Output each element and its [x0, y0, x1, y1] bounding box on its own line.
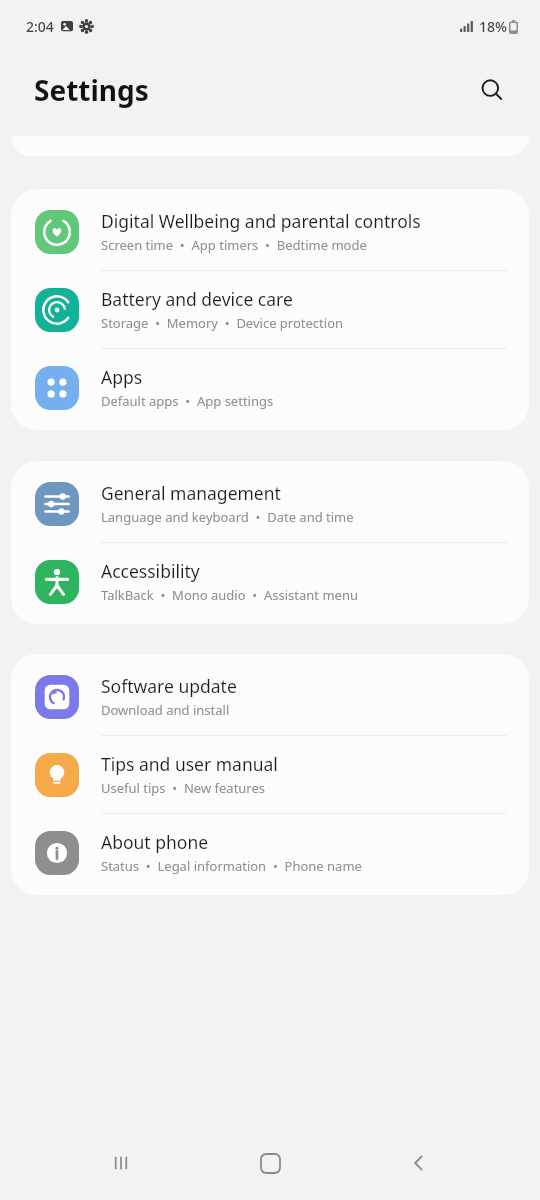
staticText: Screen time • App timers • Bedtime mode	[101, 236, 367, 254]
button[interactable]: Recent apps	[93, 1135, 149, 1191]
staticText: Tips and user manual	[101, 752, 278, 776]
staticText: Software update	[101, 674, 237, 698]
staticText: Default apps • App settings	[101, 392, 274, 410]
button[interactable]: General management	[11, 465, 529, 542]
button[interactable]: Home	[242, 1135, 298, 1191]
button[interactable]: Apps	[11, 349, 529, 426]
staticText: About phone	[101, 830, 209, 854]
button[interactable]: Software update	[11, 658, 529, 735]
staticText: Accessibility	[101, 559, 200, 583]
staticText: Storage • Memory • Device protection	[101, 314, 344, 332]
button[interactable]: Battery and device care	[11, 271, 529, 348]
staticText: Useful tips • New features	[101, 779, 266, 797]
staticText: 18%	[479, 17, 507, 36]
staticText: Apps	[101, 365, 143, 389]
staticText: Download and install	[101, 701, 230, 719]
staticText: TalkBack • Mono audio • Assistant menu	[101, 586, 358, 604]
button[interactable]: About phone	[11, 814, 529, 891]
staticText: General management	[101, 481, 281, 505]
button[interactable]: Search	[468, 66, 516, 114]
staticText: Battery and device care	[101, 287, 293, 311]
button[interactable]: Back	[391, 1135, 447, 1191]
button[interactable]: Digital Wellbeing and parental controls	[11, 193, 529, 270]
staticText: Settings	[34, 71, 149, 109]
staticText: Language and keyboard • Date and time	[101, 508, 354, 526]
staticText: Digital Wellbeing and parental controls	[101, 209, 421, 233]
button[interactable]: Tips and user manual	[11, 736, 529, 813]
staticText: Status • Legal information • Phone name	[101, 857, 362, 875]
staticText: 2:04	[26, 17, 54, 36]
button[interactable]: Accessibility	[11, 543, 529, 620]
